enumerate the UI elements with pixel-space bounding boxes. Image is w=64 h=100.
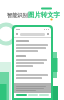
button[interactable]: Back	[14, 27, 51, 98]
button[interactable]	[28, 94, 38, 96]
button[interactable]	[16, 94, 27, 96]
button[interactable]: Back	[16, 31, 49, 37]
button[interactable]: 智能识别	[7, 11, 60, 19]
staticText: 智能识别	[7, 12, 28, 19]
button[interactable]	[39, 94, 49, 96]
button[interactable]: Recognised image	[14, 83, 51, 93]
staticText: 图片转文字	[28, 11, 60, 19]
